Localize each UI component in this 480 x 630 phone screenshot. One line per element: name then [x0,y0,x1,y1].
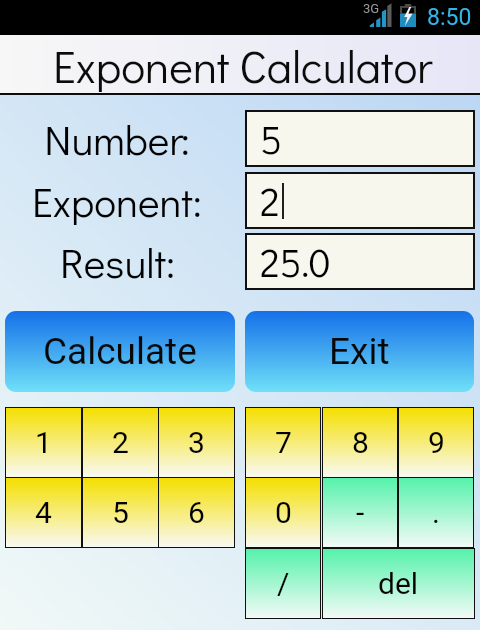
staticText: 9 [428,425,445,460]
staticText: 4 [35,495,52,530]
button[interactable]: . [399,478,473,547]
button[interactable]: - [323,478,397,547]
staticText: 8 [352,425,369,460]
button[interactable]: 25.0 [247,235,473,288]
staticText: 7 [275,425,292,460]
button[interactable]: del [323,549,474,618]
staticText: 0 [275,495,292,530]
button[interactable]: 5 [83,478,158,547]
button[interactable]: 2 [247,174,473,227]
staticText: 1 [35,425,52,460]
button[interactable]: 6 [159,478,234,547]
button[interactable]: 0 [246,478,320,547]
staticText: 2 [112,425,129,460]
button[interactable]: 8 [323,408,397,477]
staticText: 5 [260,113,282,164]
button[interactable]: / [246,549,320,618]
staticText: 2 [260,175,280,226]
staticText: del [378,566,419,601]
staticText: 5 [112,495,129,530]
staticText: Exit [329,330,390,373]
staticText: 8:50 [427,4,472,31]
button[interactable]: 9 [399,408,473,477]
staticText: Number: [44,112,190,166]
staticText: / [277,566,290,601]
button[interactable]: Exit [245,311,474,392]
staticText: 6 [188,495,205,530]
button[interactable]: 5 [247,112,473,165]
staticText: 3 [188,425,205,460]
button[interactable]: 4 [6,478,81,547]
staticText: Result: [60,235,175,289]
staticText: . [432,495,440,530]
staticText: Exponent: [32,174,202,228]
staticText: Calculate [43,330,197,373]
button[interactable]: 3 [159,408,234,477]
staticText: 25.0 [260,236,331,287]
button[interactable]: Calculate [5,311,235,392]
staticText: - [356,495,365,530]
button[interactable]: 2 [83,408,158,477]
button[interactable]: 1 [6,408,81,477]
staticText: 3G [363,1,380,16]
button[interactable]: 7 [246,408,320,477]
staticText: Exponent Calculator [53,36,433,95]
